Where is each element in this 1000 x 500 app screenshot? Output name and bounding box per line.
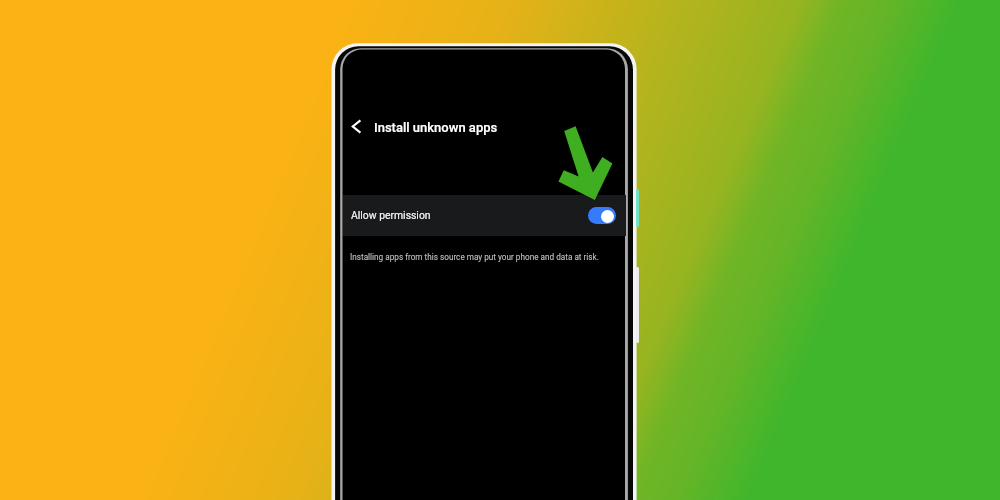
button[interactable]: Allow permission: [343, 195, 626, 236]
button[interactable]: Back: [345, 114, 370, 139]
staticText: Installing apps from this source may put…: [350, 252, 599, 262]
button[interactable]: Power button: [636, 267, 639, 343]
staticText: Install unknown apps: [374, 120, 498, 135]
staticText: Allow permission: [351, 209, 431, 221]
button[interactable]: Allow permission toggle: [588, 207, 616, 224]
button[interactable]: Volume button: [636, 189, 639, 227]
